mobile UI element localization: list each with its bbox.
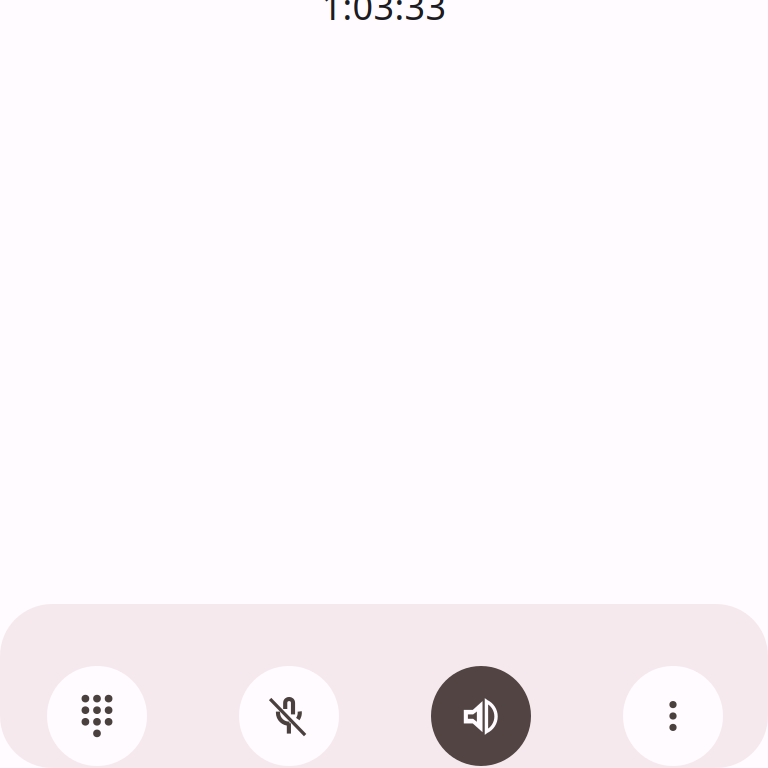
button[interactable]: Keypad bbox=[1, 666, 193, 766]
button[interactable]: Speaker bbox=[385, 666, 577, 766]
staticText: 1:03:33 bbox=[321, 0, 446, 30]
button[interactable]: Mute bbox=[193, 666, 385, 766]
button[interactable]: More options bbox=[577, 666, 768, 766]
